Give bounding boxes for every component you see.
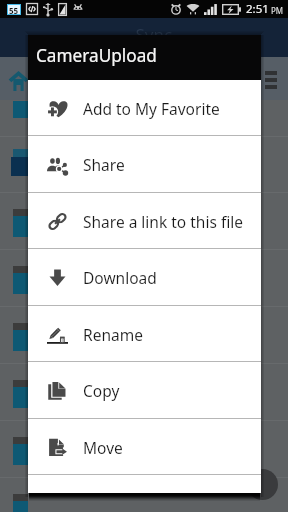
staticText: PM: [271, 5, 284, 16]
button[interactable]: Copy: [28, 362, 261, 419]
staticText: Copy: [83, 380, 120, 401]
staticText: Rename: [83, 324, 143, 345]
staticText: 55: [9, 5, 19, 14]
button[interactable]: Download: [28, 249, 261, 306]
button[interactable]: Move: [28, 419, 261, 475]
button[interactable]: Add to My Favorite: [28, 80, 261, 136]
staticText: 2:51: [246, 1, 269, 17]
button[interactable]: Share a link to this file: [28, 193, 261, 249]
staticText: Move: [83, 437, 123, 458]
staticText: Add to My Favorite: [83, 98, 220, 119]
staticText: Share: [83, 154, 125, 175]
staticText: CameraUpload: [36, 44, 157, 67]
staticText: -Sync: [130, 23, 173, 46]
button[interactable]: Add: [247, 469, 278, 500]
staticText: Share a link to this file: [83, 211, 243, 232]
staticText: Download: [83, 267, 157, 288]
button[interactable]: Share: [28, 136, 261, 193]
button[interactable]: Rename: [28, 306, 261, 362]
